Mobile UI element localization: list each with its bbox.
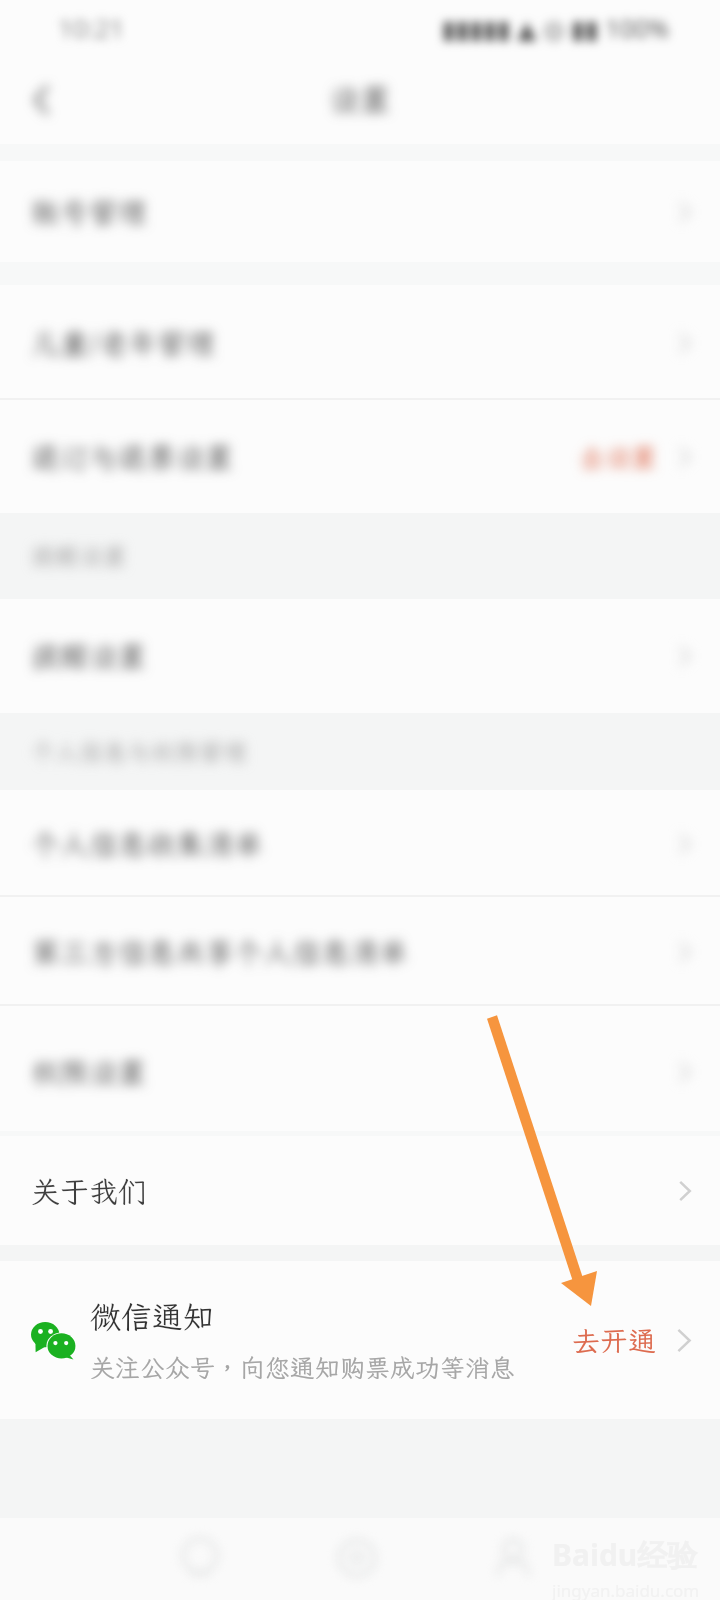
staticText: 个人信息收集清单 bbox=[31, 825, 264, 863]
button[interactable]: 提醒设置 bbox=[0, 599, 720, 713]
staticText: 去开通 bbox=[572, 1322, 657, 1359]
button[interactable]: 退订与退票设置 bbox=[0, 400, 720, 513]
button[interactable]: 儿童/老年管理 bbox=[0, 285, 720, 400]
staticText: 账号管理 bbox=[31, 193, 148, 231]
staticText: 退订与退票设置 bbox=[31, 438, 235, 476]
button[interactable]: 个人信息收集清单 bbox=[0, 790, 720, 897]
staticText: 权限设置 bbox=[31, 1053, 148, 1091]
button[interactable]: 关于我们 bbox=[0, 1136, 720, 1245]
staticText: 提醒设置 bbox=[31, 637, 148, 675]
button[interactable]: Back bbox=[14, 72, 70, 128]
button[interactable]: 微信通知 bbox=[0, 1261, 720, 1419]
staticText: 去设置 bbox=[579, 440, 658, 474]
button[interactable]: Profile bbox=[485, 1530, 541, 1586]
staticText: Baidu经验 bbox=[552, 1534, 698, 1575]
staticText: 设置 bbox=[329, 79, 391, 120]
button[interactable]: 第三方信息共享个人信息清单 bbox=[0, 897, 720, 1006]
staticText: 关于我们 bbox=[31, 1172, 148, 1210]
staticText: 关注公众号，向您通知购票成功等消息 bbox=[90, 1351, 516, 1384]
staticText: 第三方信息共享个人信息清单 bbox=[31, 933, 409, 971]
staticText: 个人信息与权限管理 bbox=[31, 736, 247, 768]
button[interactable]: 权限设置 bbox=[0, 1006, 720, 1131]
staticText: 提醒设置 bbox=[31, 540, 127, 572]
staticText: 微信通知 bbox=[90, 1296, 214, 1337]
staticText: ▮▮▮▮▮ ▲ ◎ ▮▮ 100% bbox=[442, 11, 670, 45]
button[interactable]: 账号管理 bbox=[0, 161, 720, 262]
staticText: 儿童/老年管理 bbox=[31, 324, 216, 362]
staticText: 10:21 bbox=[58, 10, 125, 45]
